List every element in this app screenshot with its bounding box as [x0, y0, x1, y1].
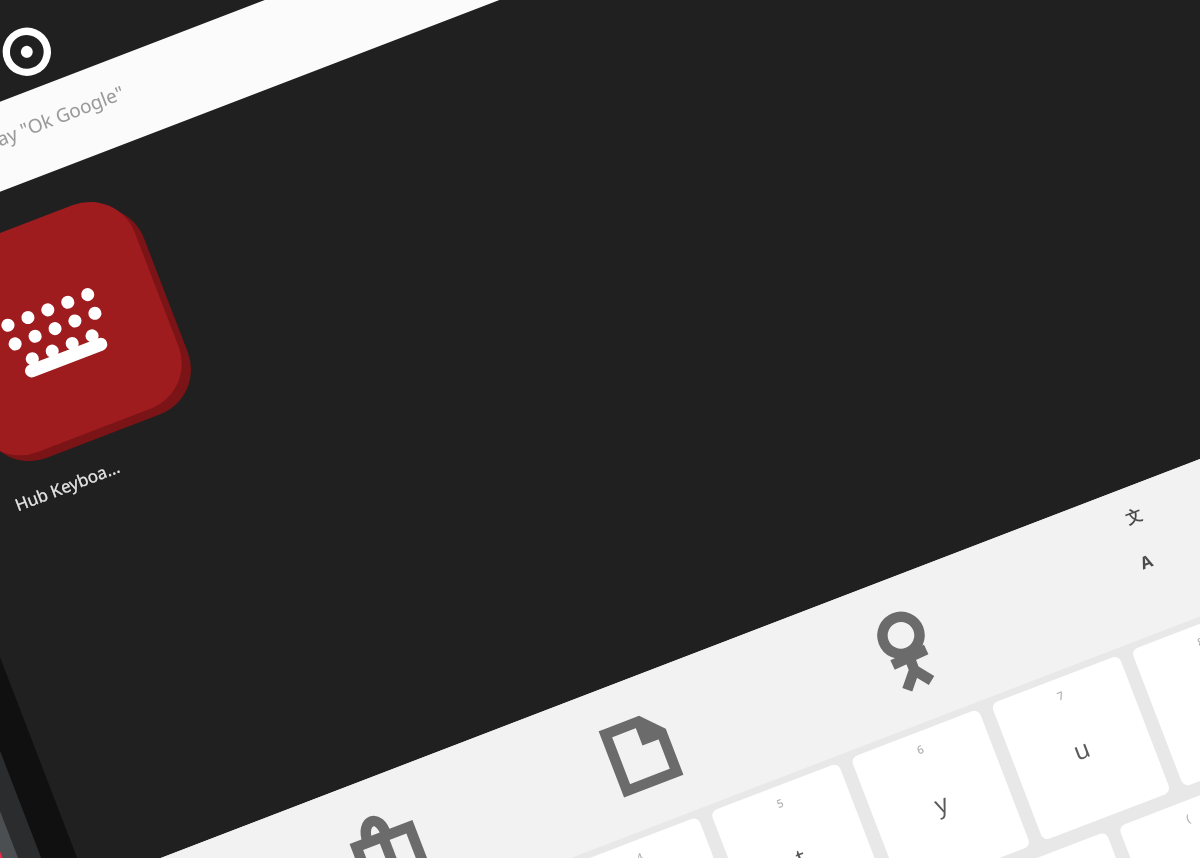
button[interactable]: Hub Keyboard phone mockup	[0, 0, 1200, 858]
